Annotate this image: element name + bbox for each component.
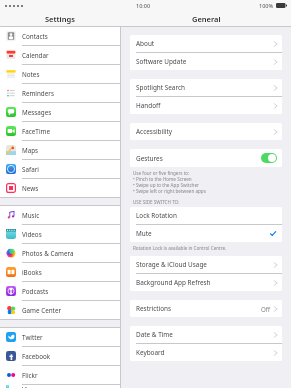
button[interactable]: Reminders: [0, 84, 120, 102]
staticText: Podcasts: [22, 287, 49, 296]
button[interactable]: Contacts: [0, 27, 120, 45]
button[interactable]: Vimeo: [0, 385, 120, 388]
button[interactable]: Accessibility: [130, 123, 282, 140]
staticText: FaceTime: [22, 127, 50, 136]
staticText: Handoff: [136, 101, 161, 110]
button[interactable]: Videos: [0, 225, 120, 243]
button[interactable]: Music: [0, 206, 120, 224]
button[interactable]: iBooks: [0, 263, 120, 281]
staticText: Settings: [45, 14, 75, 24]
button[interactable]: Facebook: [0, 347, 120, 365]
button[interactable]: Podcasts: [0, 282, 120, 300]
staticText: Notes: [22, 70, 40, 79]
button[interactable]: Messages: [0, 103, 120, 121]
staticText: Accessibility: [136, 127, 173, 136]
staticText: Videos: [22, 230, 42, 239]
staticText: Flickr: [22, 371, 38, 380]
staticText: iBooks: [22, 268, 42, 277]
staticText: Safari: [22, 165, 39, 174]
staticText: General: [192, 14, 221, 24]
button[interactable]: Mute: [130, 225, 282, 242]
button[interactable]: Background App Refresh: [130, 274, 282, 291]
staticText: Facebook: [22, 352, 51, 361]
button[interactable]: Maps: [0, 141, 120, 159]
staticText: About: [136, 39, 155, 48]
staticText: • Pinch to the Home Screen: [133, 176, 192, 182]
staticText: Reminders: [22, 89, 54, 98]
staticText: Photos & Camera: [22, 249, 74, 258]
staticText: Maps: [22, 146, 39, 155]
button[interactable]: Date & Time: [130, 326, 282, 343]
staticText: Software Update: [136, 57, 187, 66]
staticText: Calendar: [22, 51, 49, 60]
button[interactable]: Keyboard: [130, 344, 282, 361]
button[interactable]: Notes: [0, 65, 120, 83]
button[interactable]: Twitter: [0, 328, 120, 346]
staticText: Use four or five fingers to:: [133, 170, 190, 176]
button[interactable]: Safari: [0, 160, 120, 178]
button[interactable]: Gestures toggle: [261, 153, 277, 163]
staticText: Game Center: [22, 306, 62, 315]
button[interactable]: Photos & Camera: [0, 244, 120, 262]
button[interactable]: Flickr: [0, 366, 120, 384]
button[interactable]: Game Center: [0, 301, 120, 319]
staticText: USE SIDE SWITCH TO:: [133, 199, 180, 205]
button[interactable]: Handoff: [130, 97, 282, 114]
staticText: Music: [22, 211, 40, 220]
staticText: Date & Time: [136, 330, 173, 339]
staticText: Vimeo: [22, 385, 41, 388]
button[interactable]: Software Update: [130, 53, 282, 70]
button[interactable]: News: [0, 179, 120, 197]
staticText: Spotlight Search: [136, 83, 185, 92]
button[interactable]: Storage & iCloud Usage: [130, 256, 282, 273]
button[interactable]: Lock Rotation: [130, 207, 282, 224]
staticText: Keyboard: [136, 348, 165, 357]
staticText: Gestures: [136, 154, 163, 163]
staticText: Rotation Lock is available in Control Ce…: [133, 245, 227, 251]
staticText: • Swipe left or right between apps: [133, 188, 206, 194]
button[interactable]: FaceTime: [0, 122, 120, 140]
button[interactable]: About: [130, 35, 282, 52]
button[interactable]: Calendar: [0, 46, 120, 64]
staticText: Lock Rotation: [136, 211, 177, 220]
staticText: Contacts: [22, 32, 48, 41]
staticText: Twitter: [22, 333, 43, 342]
staticText: Mute: [136, 229, 152, 238]
staticText: 100%: [259, 2, 274, 9]
staticText: Restrictions: [136, 304, 172, 313]
button[interactable]: Gestures: [130, 149, 282, 167]
staticText: • Swipe up to the App Switcher: [133, 182, 199, 188]
button[interactable]: Spotlight Search: [130, 79, 282, 96]
staticText: Off: [261, 305, 271, 313]
staticText: Background App Refresh: [136, 278, 211, 287]
button[interactable]: Restrictions: [130, 300, 282, 317]
staticText: News: [22, 184, 39, 193]
staticText: Storage & iCloud Usage: [136, 260, 207, 269]
staticText: 10:00: [136, 2, 151, 9]
staticText: Messages: [22, 108, 52, 117]
